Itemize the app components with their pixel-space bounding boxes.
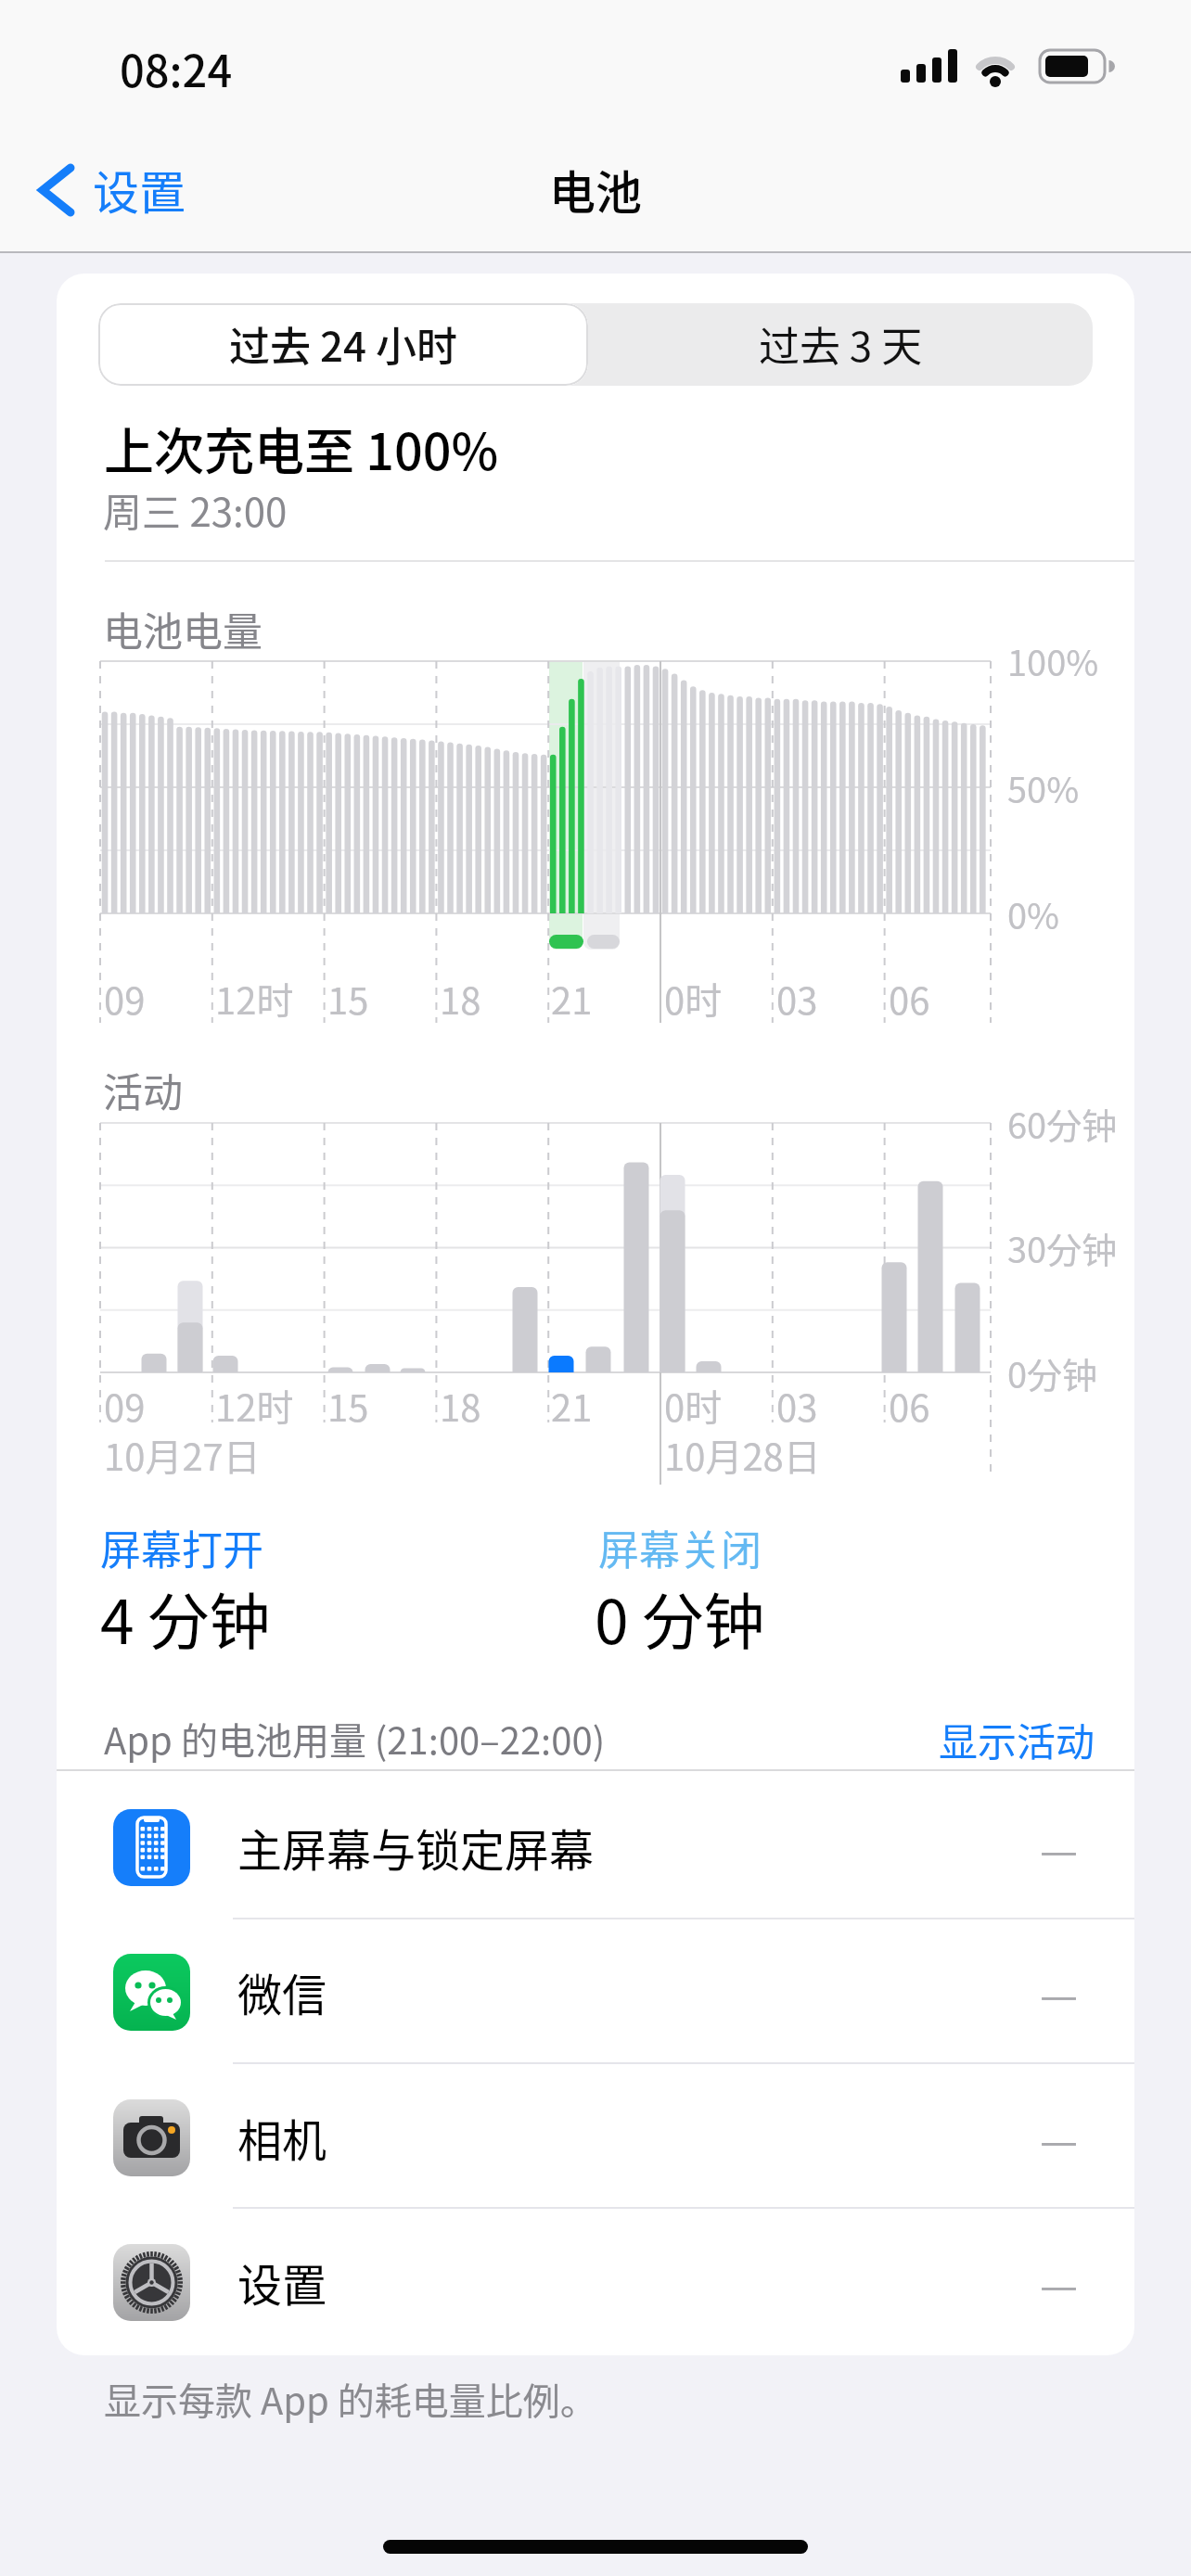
button[interactable]	[28, 144, 232, 236]
staticText: 0时	[664, 1379, 723, 1433]
staticText: 活动	[103, 1061, 183, 1118]
staticText: 15	[327, 972, 369, 1026]
staticText: 屏幕关闭	[598, 1518, 762, 1577]
staticText: 03	[776, 1379, 818, 1433]
button[interactable]	[57, 2206, 1134, 2351]
button[interactable]	[918, 1706, 1104, 1771]
staticText: 4 分钟	[100, 1573, 271, 1662]
staticText: 18	[440, 972, 481, 1026]
staticText: 0分钟	[1007, 1347, 1098, 1398]
staticText: 显示每款 App 的耗电量比例。	[104, 2372, 597, 2426]
staticText: 09	[104, 1379, 146, 1433]
button[interactable]	[57, 2061, 1134, 2206]
staticText: 10月28日	[664, 1428, 821, 1482]
staticText: 09	[104, 972, 146, 1026]
staticText: 设置	[93, 156, 186, 223]
button[interactable]	[588, 303, 1087, 386]
staticText: 屏幕打开	[100, 1518, 263, 1577]
staticText: App 的电池用量 (21:00–22:00)	[104, 1712, 606, 1766]
staticText: 相机	[237, 2105, 327, 2170]
staticText: 15	[327, 1379, 369, 1433]
staticText: —	[1040, 1961, 1079, 2023]
button[interactable]	[57, 1917, 1134, 2061]
staticText: 12时	[215, 1379, 294, 1433]
staticText: 100%	[1007, 635, 1099, 686]
staticText: —	[1040, 2251, 1079, 2314]
staticText: 0%	[1007, 888, 1060, 939]
staticText: 06	[889, 1379, 930, 1433]
staticText: —	[1040, 2107, 1079, 2169]
staticText: 周三 23:00	[103, 481, 288, 538]
staticText: 03	[776, 972, 818, 1026]
staticText: 21	[551, 1379, 593, 1433]
button[interactable]	[57, 1772, 1134, 1917]
staticText: 0时	[664, 972, 723, 1026]
staticText: 主屏幕与锁定屏幕	[237, 1815, 595, 1880]
staticText: 50%	[1007, 762, 1080, 813]
staticText: 18	[440, 1379, 481, 1433]
staticText: 60分钟	[1007, 1098, 1118, 1149]
staticText: 10月27日	[104, 1428, 261, 1482]
staticText: 过去 3 天	[759, 314, 923, 374]
staticText: 过去 24 小时	[229, 314, 457, 374]
staticText: 12时	[215, 972, 294, 1026]
staticText: —	[1040, 1817, 1079, 1879]
staticText: 30分钟	[1007, 1222, 1118, 1273]
staticText: 上次充电至 100%	[104, 412, 499, 484]
staticText: 微信	[237, 1959, 327, 2024]
staticText: 06	[889, 972, 930, 1026]
staticText: 0 分钟	[595, 1573, 765, 1662]
staticText: 显示活动	[939, 1711, 1095, 1767]
staticText: 设置	[237, 2250, 327, 2315]
staticText: 电池	[549, 156, 642, 223]
staticText: 电池电量	[103, 600, 263, 657]
button[interactable]	[98, 303, 588, 386]
staticText: 21	[551, 972, 593, 1026]
staticText: 08:24	[120, 36, 233, 99]
